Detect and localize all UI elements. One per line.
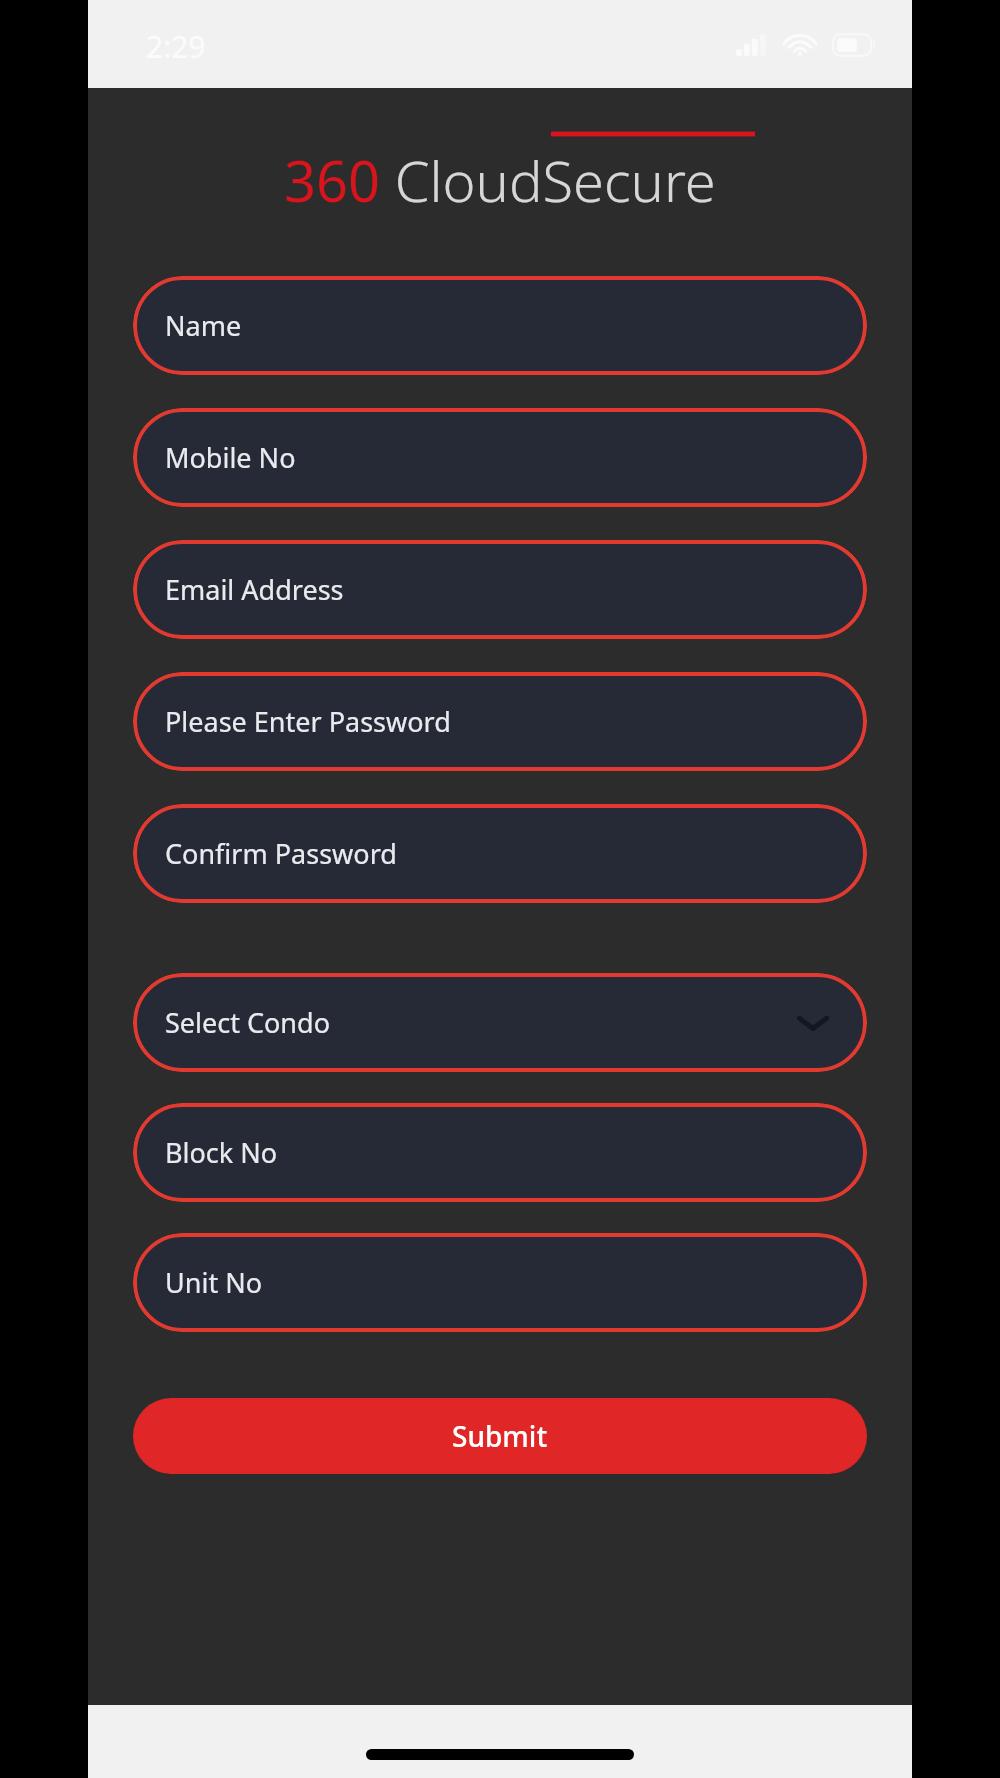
button[interactable]: Mobile No <box>133 408 867 507</box>
staticText: Confirm Password <box>165 835 397 872</box>
staticText: Block No <box>165 1134 278 1171</box>
staticText: Submit <box>452 1417 548 1455</box>
button[interactable]: Email Address <box>133 540 867 639</box>
staticText: 2:29 <box>146 26 206 67</box>
other: Expand condo list <box>795 1005 831 1041</box>
staticText: Name <box>165 307 242 344</box>
button[interactable]: Select Condo <box>133 973 867 1072</box>
button[interactable]: Name <box>133 276 867 375</box>
button[interactable]: Block No <box>133 1103 867 1202</box>
staticText: Please Enter Password <box>165 703 451 740</box>
button[interactable]: Confirm Password <box>133 804 867 903</box>
button[interactable]: Submit <box>133 1398 867 1474</box>
staticText: Unit No <box>165 1264 263 1301</box>
staticText: Mobile No <box>165 439 296 476</box>
staticText: Select Condo <box>165 1004 330 1041</box>
button[interactable]: Unit No <box>133 1233 867 1332</box>
button[interactable]: Please Enter Password <box>133 672 867 771</box>
staticText: 360 CloudSecure <box>284 142 716 218</box>
staticText: Email Address <box>165 571 344 608</box>
